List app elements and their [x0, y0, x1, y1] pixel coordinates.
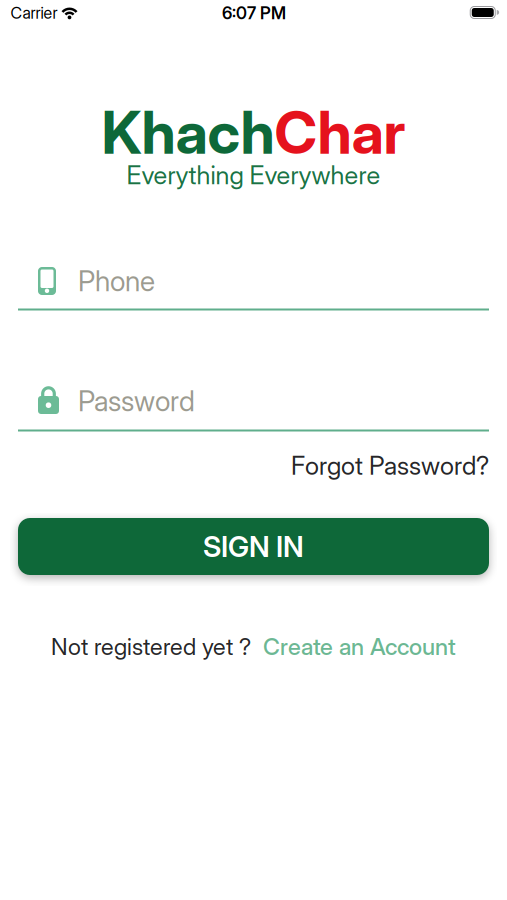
staticText: Char [274, 97, 405, 168]
textField[interactable]: Phone [78, 264, 489, 298]
staticText: Carrier [10, 3, 57, 23]
staticText: Not registered yet ? [51, 632, 251, 661]
staticText: SIGN IN [203, 529, 304, 564]
staticText: 6:07 PM [222, 3, 286, 23]
button[interactable]: SIGN IN [18, 518, 489, 575]
button[interactable]: Create an Account [263, 632, 456, 661]
staticText: Create an Account [263, 632, 456, 661]
button[interactable]: Forgot Password? [291, 450, 489, 481]
staticText: Password [78, 384, 195, 418]
staticText: Everything Everywhere [126, 160, 380, 190]
staticText: Khach [101, 97, 274, 168]
staticText: Forgot Password? [291, 450, 489, 481]
secureTextField[interactable]: Password [78, 384, 489, 418]
staticText: Phone [78, 264, 155, 298]
